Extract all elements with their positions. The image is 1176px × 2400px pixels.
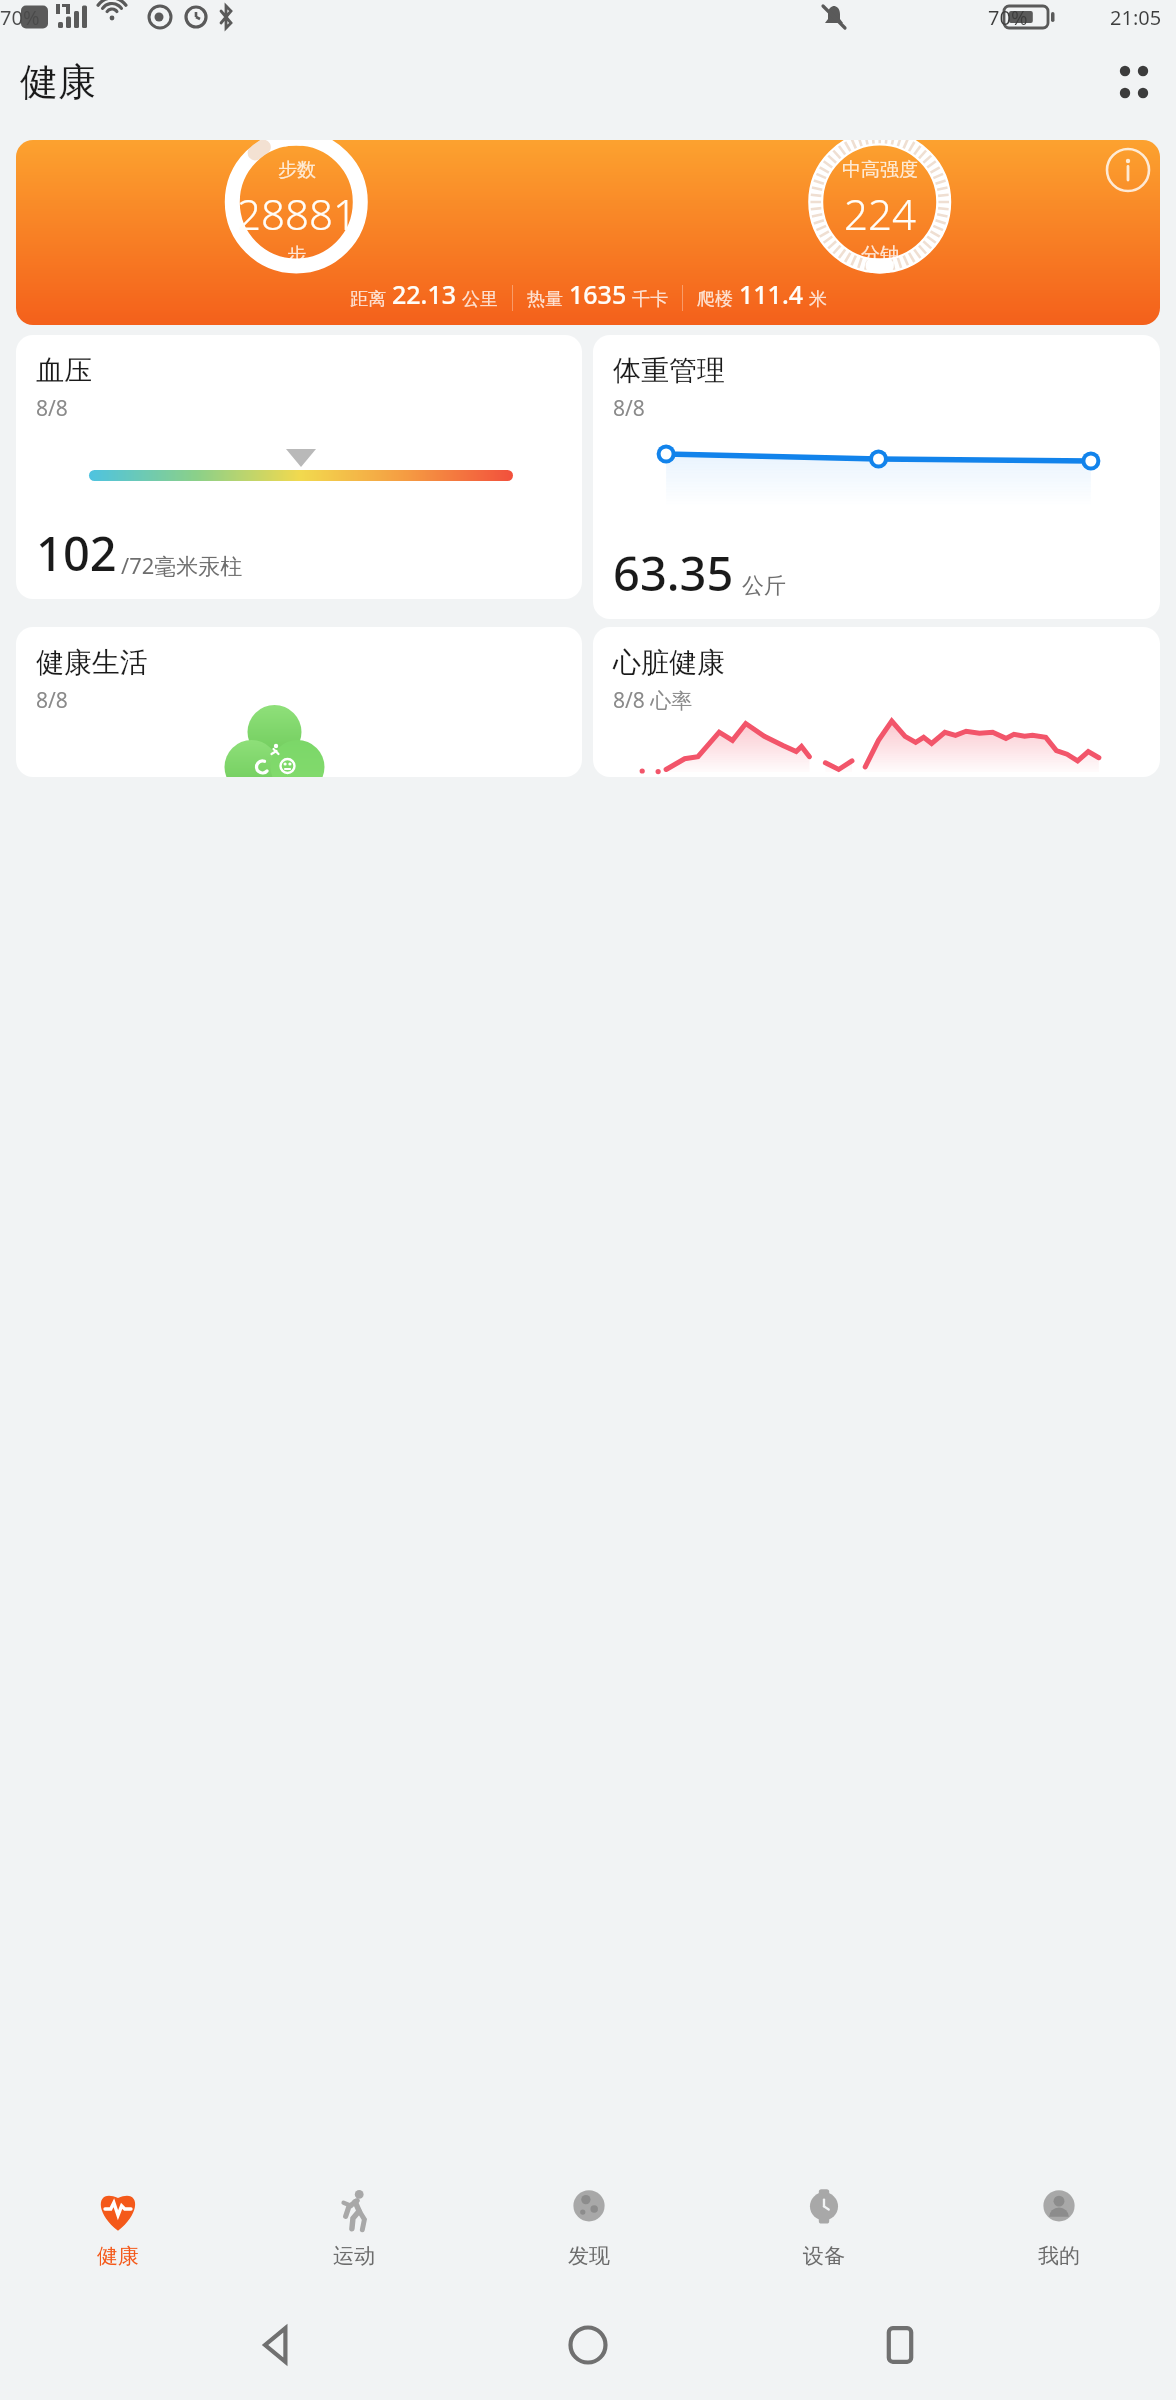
button[interactable]: 心脏健康 [593, 627, 1160, 777]
staticText: 8/8 [613, 394, 645, 423]
staticText: 心脏健康 [613, 645, 725, 680]
staticText: 8/8 心率 [613, 686, 693, 715]
staticText: 111.4 [739, 277, 804, 311]
button[interactable]: Home [553, 2310, 623, 2380]
staticText: 血压 [36, 353, 92, 388]
button[interactable]: 血压 [16, 335, 582, 599]
staticText: 1635 [569, 277, 627, 311]
staticText: 8/8 [36, 686, 68, 715]
staticText: 爬楼 [697, 288, 733, 311]
staticText: 224 [844, 185, 916, 242]
staticText: 我的 [1038, 2243, 1080, 2269]
staticText: 102 [36, 521, 117, 585]
staticText: 公里 [462, 288, 498, 311]
button[interactable]: Back [242, 2310, 312, 2380]
button[interactable]: 发现 [471, 2162, 706, 2290]
staticText: 发现 [568, 2243, 610, 2269]
button[interactable]: 健康 [0, 2162, 236, 2290]
staticText: 热量 [527, 288, 563, 311]
staticText: 米 [809, 288, 827, 311]
staticText: 分钟 [861, 243, 899, 267]
button[interactable]: 运动 [236, 2162, 471, 2290]
staticText: 22.13 [392, 277, 457, 311]
staticText: 体重管理 [613, 353, 725, 388]
staticText: 健康 [97, 2243, 139, 2269]
staticText: 70% [0, 4, 40, 31]
staticText: 距离 [350, 288, 386, 311]
staticText: /72毫米汞柱 [121, 550, 243, 580]
button[interactable]: More options [1106, 54, 1162, 110]
button[interactable]: 体重管理 [593, 335, 1160, 619]
button[interactable]: Information [1108, 150, 1148, 190]
button[interactable]: 我的 [941, 2162, 1176, 2290]
staticText: 千卡 [632, 288, 668, 311]
staticText: 步数 [278, 158, 316, 182]
button[interactable]: Recent apps [865, 2310, 935, 2380]
staticText: 健康 [20, 58, 96, 106]
button[interactable]: 设备 [706, 2162, 941, 2290]
staticText: 28881 [237, 185, 357, 242]
staticText: 中高强度 [842, 158, 918, 182]
staticText: 步 [287, 243, 306, 267]
staticText: 公斤 [742, 572, 786, 600]
staticText: 运动 [333, 2243, 375, 2269]
button[interactable]: 健康生活 [16, 627, 582, 777]
staticText: 63.35 [613, 541, 734, 605]
staticText: 21:05 [1110, 4, 1162, 31]
staticText: 70% [988, 4, 1028, 31]
staticText: 设备 [803, 2243, 845, 2269]
staticText: 健康生活 [36, 645, 148, 680]
button[interactable]: 步数 [16, 140, 1160, 325]
staticText: 8/8 [36, 394, 68, 423]
